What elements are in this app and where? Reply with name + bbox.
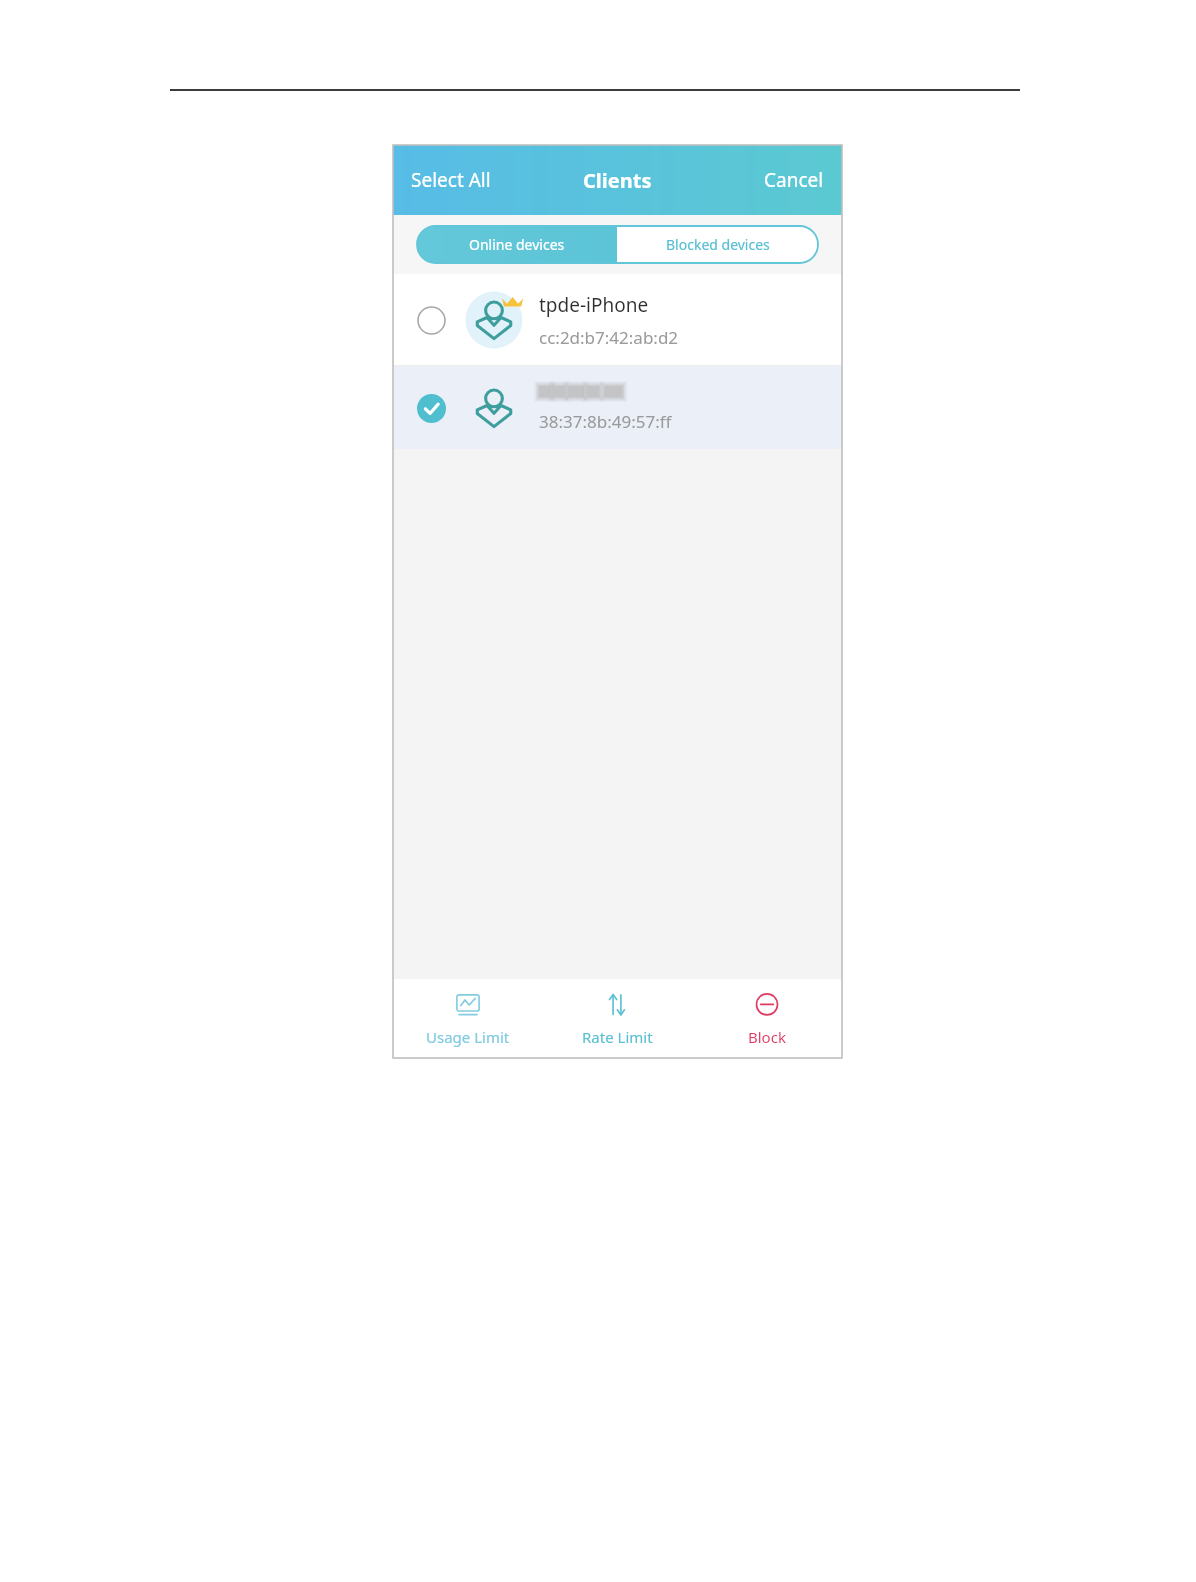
button[interactable]: 38:37:8b:49:57:ff <box>393 366 842 449</box>
button[interactable]: Blocked devices <box>617 226 818 263</box>
staticText: Rate Limit <box>582 1027 653 1047</box>
button[interactable]: Select All <box>405 161 497 199</box>
button[interactable]: Online devices <box>417 226 617 263</box>
button[interactable]: Usage Limit <box>393 982 542 1055</box>
button[interactable]: Rate Limit <box>542 982 692 1055</box>
button[interactable]: Block <box>692 982 842 1055</box>
staticText: Online devices <box>469 235 565 254</box>
button[interactable]: Cancel <box>758 161 830 199</box>
staticText: Block <box>748 1027 786 1047</box>
staticText: Select All <box>411 167 491 193</box>
staticText: cc:2d:b7:42:ab:d2 <box>539 326 679 349</box>
staticText: Cancel <box>764 167 824 193</box>
staticText: 38:37:8b:49:57:ff <box>539 410 672 433</box>
staticText: Usage Limit <box>426 1027 510 1047</box>
staticText: tpde-iPhone <box>539 292 649 318</box>
staticText: Clients <box>583 167 652 194</box>
button[interactable]: tpde-iPhone <box>393 274 842 366</box>
staticText: Blocked devices <box>666 235 770 254</box>
